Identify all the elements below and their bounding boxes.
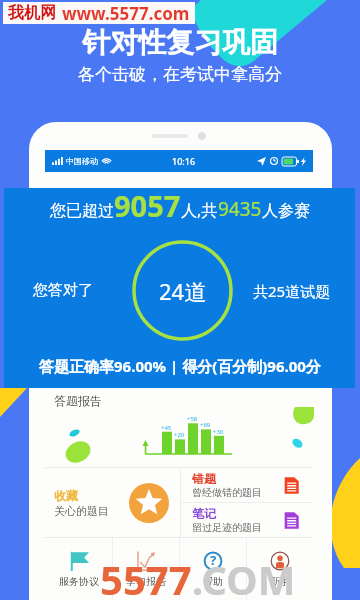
staticText: ? bbox=[210, 551, 217, 569]
staticText: 错题 bbox=[192, 471, 216, 486]
staticText: +30 bbox=[213, 428, 224, 436]
staticText: 帮助 bbox=[203, 575, 223, 588]
button[interactable]: 错题 bbox=[192, 468, 301, 502]
staticText: 您已超过 bbox=[50, 201, 114, 221]
staticText: +69 bbox=[200, 421, 211, 429]
staticText: 各个击破，在考试中拿高分 bbox=[0, 64, 360, 85]
button[interactable]: 服务协议 bbox=[45, 538, 112, 600]
staticText: 笔记 bbox=[192, 506, 216, 521]
staticText: 中国移动 bbox=[66, 156, 98, 166]
staticText: 我机网 bbox=[8, 3, 56, 23]
staticText: 答题正确率96.00% | 得分(百分制)96.00分 bbox=[39, 356, 321, 376]
staticText: 关心的题目 bbox=[54, 504, 109, 518]
staticText: 留过足迹的题目 bbox=[192, 521, 262, 534]
button[interactable]: 新手 bbox=[247, 538, 313, 600]
staticText: 共25道试题 bbox=[253, 281, 331, 301]
staticText: 人参赛 bbox=[262, 201, 310, 221]
staticText: .COM bbox=[192, 552, 296, 600]
staticText: 10:16 bbox=[172, 155, 196, 167]
staticText: 5577 bbox=[100, 552, 192, 600]
staticText: 曾经做错的题目 bbox=[192, 486, 262, 499]
button[interactable]: 收藏 bbox=[45, 468, 180, 537]
staticText: +58 bbox=[187, 415, 198, 423]
staticText: 人,共 bbox=[181, 199, 218, 221]
staticText: 您答对了 bbox=[33, 281, 93, 300]
button[interactable]: 帮助 bbox=[180, 538, 246, 600]
button[interactable]: 学习报告 bbox=[113, 538, 179, 600]
staticText: 9057 bbox=[114, 186, 181, 225]
staticText: 9435 bbox=[218, 196, 262, 222]
staticText: 24道 bbox=[159, 276, 207, 306]
staticText: +20 bbox=[174, 431, 185, 439]
staticText: 新手 bbox=[270, 575, 290, 588]
staticText: +45 bbox=[161, 424, 172, 432]
staticText: 学习报告 bbox=[126, 575, 166, 588]
button[interactable]: 笔记 bbox=[192, 503, 301, 537]
staticText: 针对性复习巩固 bbox=[0, 25, 360, 60]
staticText: 服务协议 bbox=[59, 575, 99, 588]
staticText: 收藏 bbox=[54, 488, 78, 503]
staticText: www.5577.com bbox=[62, 2, 190, 24]
staticText: 答题报告 bbox=[54, 393, 102, 408]
